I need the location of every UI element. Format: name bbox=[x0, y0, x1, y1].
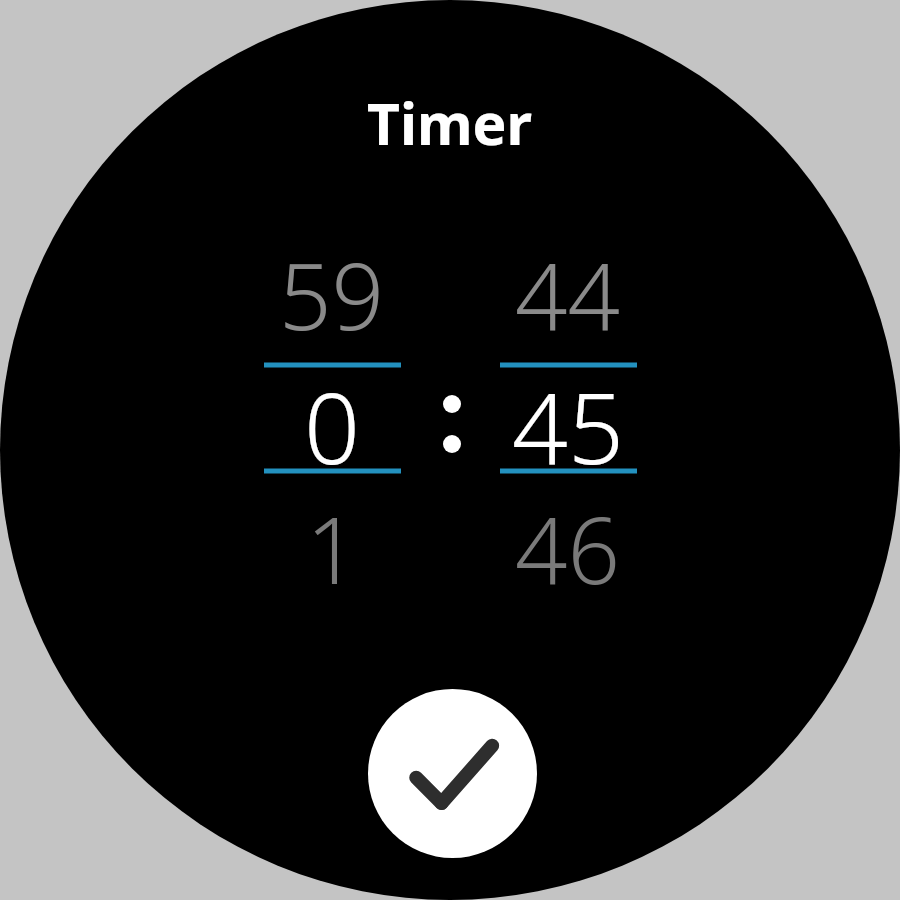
staticText: Timer bbox=[367, 84, 533, 156]
button[interactable]: Seconds bbox=[482, 232, 660, 612]
staticText: 44 bbox=[515, 232, 621, 356]
staticText: 1 bbox=[306, 486, 359, 610]
staticText: 45 bbox=[512, 359, 624, 483]
staticText: 59 bbox=[279, 232, 385, 356]
staticText: 46 bbox=[515, 486, 621, 610]
button[interactable]: Timer bbox=[300, 84, 600, 156]
staticText: 0 bbox=[304, 359, 360, 483]
button[interactable]: Confirm bbox=[368, 689, 537, 858]
button[interactable]: Minutes bbox=[244, 232, 422, 612]
